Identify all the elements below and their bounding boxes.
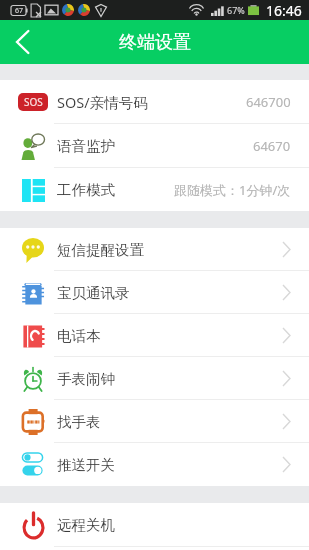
staticText: 16:46 <box>266 1 302 20</box>
button[interactable]: Back <box>0 20 44 64</box>
staticText: 67 <box>15 6 24 16</box>
button[interactable]: 推送开关 <box>0 443 309 486</box>
staticText: 终端设置 <box>119 31 191 54</box>
staticText: 短信提醒设置 <box>57 241 144 259</box>
staticText: 语音监护 <box>57 137 115 155</box>
button[interactable]: SOS <box>0 80 309 124</box>
staticText: 跟随模式：1分钟/次 <box>174 181 291 199</box>
staticText: SOS/亲情号码 <box>57 92 148 112</box>
staticText: 找手表 <box>57 413 101 431</box>
button[interactable]: 找手表 <box>0 400 309 443</box>
staticText: 电话本 <box>57 327 101 345</box>
staticText: 远程关机 <box>57 516 115 534</box>
staticText: 手表闹钟 <box>57 370 115 388</box>
staticText: 宝贝通讯录 <box>57 284 130 302</box>
staticText: 67% <box>227 4 245 16</box>
staticText: 推送开关 <box>57 456 115 474</box>
staticText: 64670 <box>253 137 291 155</box>
button[interactable]: 工作模式 <box>0 168 309 211</box>
button[interactable]: 电话本 <box>0 314 309 357</box>
button[interactable]: 远程关机 <box>0 503 309 547</box>
button[interactable]: 手表闹钟 <box>0 357 309 400</box>
button[interactable]: 语音监护 <box>0 124 309 168</box>
button[interactable]: 短信提醒设置 <box>0 228 309 271</box>
staticText: 646700 <box>246 93 291 111</box>
button[interactable]: 宝贝通讯录 <box>0 271 309 314</box>
staticText: 工作模式 <box>57 181 115 199</box>
staticText: SOS <box>24 95 43 109</box>
